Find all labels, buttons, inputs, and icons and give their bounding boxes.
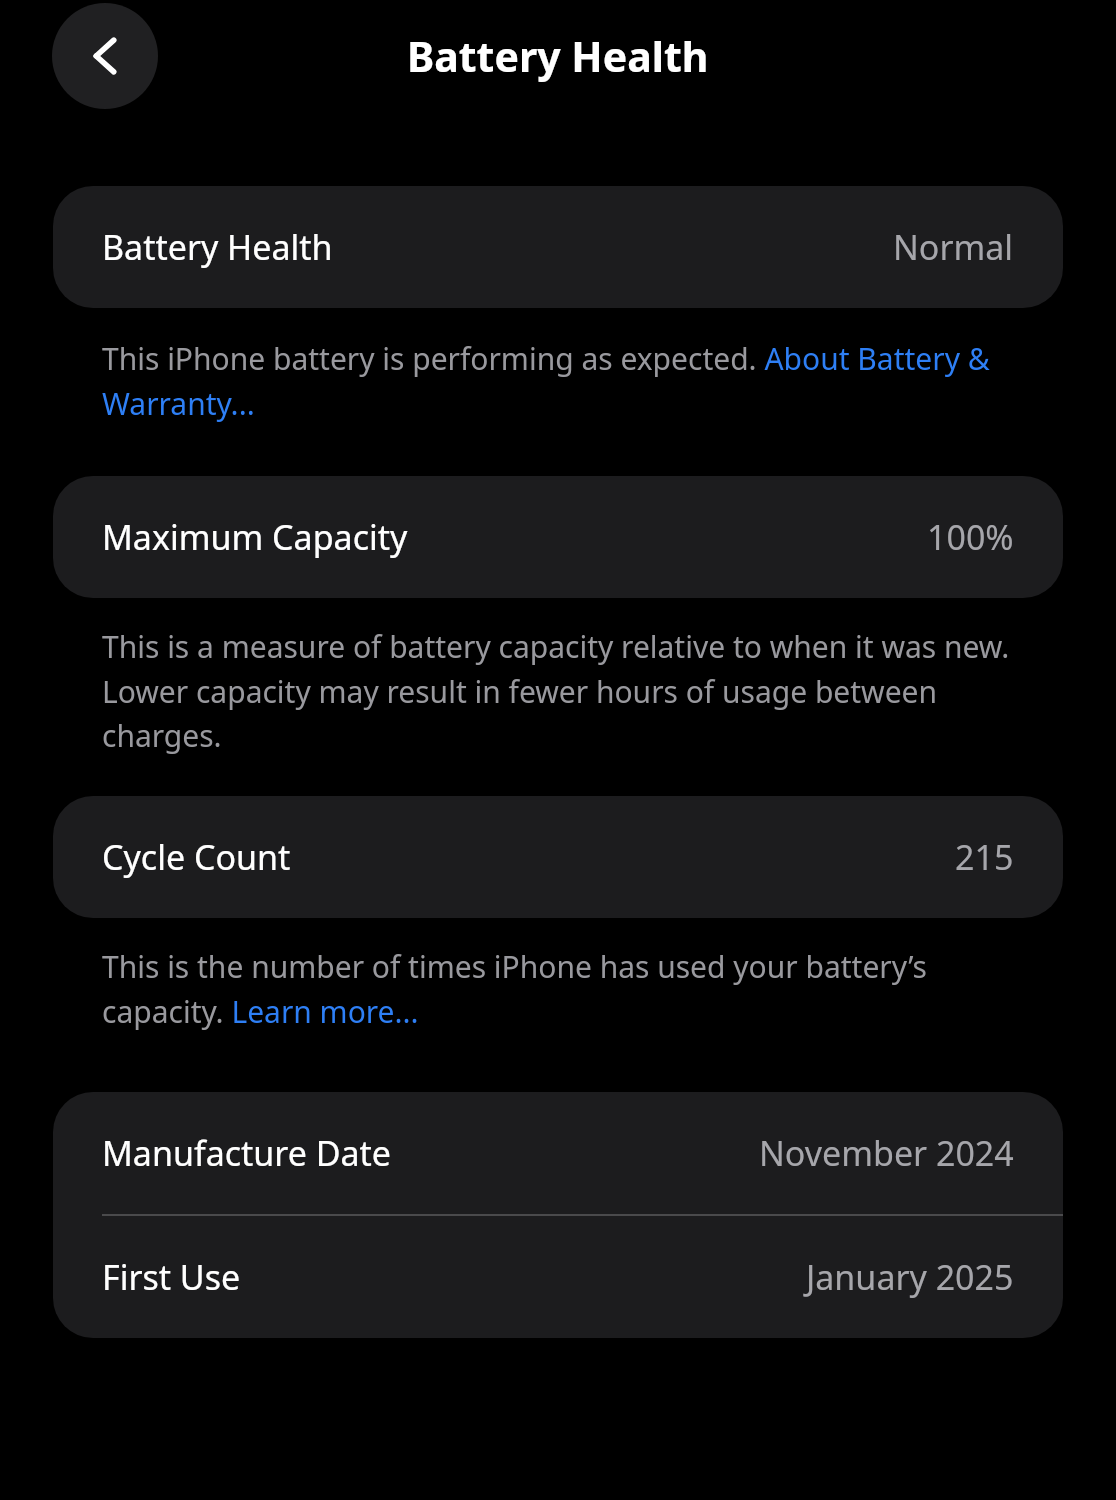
staticText: This is a measure of battery capacity re… [102,626,1014,755]
button[interactable]: Manufacture Date [53,1092,1063,1214]
staticText: This is the number of times iPhone has u… [102,946,1014,1031]
staticText: Maximum Capacity [102,514,408,560]
button[interactable]: Battery Health [53,186,1063,308]
staticText: January 2025 [806,1254,1014,1300]
button[interactable]: Cycle Count [53,796,1063,918]
staticText: First Use [102,1254,241,1300]
staticText: Battery Health [102,224,333,270]
staticText: This iPhone battery is performing as exp… [102,338,1014,423]
staticText: Manufacture Date [102,1130,392,1176]
button[interactable]: First Use [53,1216,1063,1338]
staticText: 100% [927,514,1014,560]
staticText: November 2024 [759,1130,1014,1176]
button[interactable]: Back [52,3,158,109]
staticText: 215 [955,834,1014,880]
staticText: Normal [893,224,1014,270]
staticText: Battery Health [407,28,709,84]
button[interactable]: Maximum Capacity [53,476,1063,598]
staticText: Cycle Count [102,834,291,880]
